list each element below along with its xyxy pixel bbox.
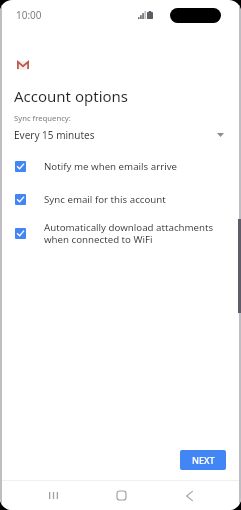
staticText: Automatically download attachments when … — [44, 221, 214, 246]
staticText: Every 15 minutes — [14, 128, 95, 142]
staticText: 10:00 — [16, 8, 42, 22]
staticText: Account options — [14, 86, 129, 106]
button[interactable]: Sync email for this account — [0, 189, 241, 210]
staticText: Sync frequency: — [14, 113, 71, 123]
button[interactable]: Recent apps — [33, 481, 73, 510]
button[interactable]: Notify me when emails arrive — [0, 156, 241, 177]
button[interactable]: Automatically download attachments when … — [0, 220, 241, 246]
staticText: NEXT — [192, 454, 215, 466]
button[interactable]: Home — [101, 481, 141, 510]
button[interactable]: NEXT — [180, 450, 226, 470]
staticText: Sync email for this account — [44, 193, 166, 206]
button[interactable]: Every 15 minutes — [0, 128, 241, 142]
staticText: Notify me when emails arrive — [44, 160, 178, 173]
button[interactable]: Back — [169, 481, 209, 510]
